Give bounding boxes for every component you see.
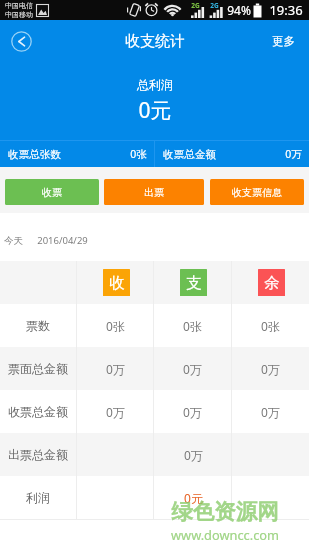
staticText: 0万 — [261, 404, 280, 420]
button[interactable]: 票面总金额 — [0, 347, 309, 390]
staticText: 余 — [264, 273, 280, 293]
button[interactable]: 出票总金额 — [0, 433, 309, 476]
staticText: 今天 — [4, 235, 23, 247]
staticText: 利润 — [26, 490, 50, 505]
staticText: 更多 — [272, 34, 295, 48]
staticText: 中国电信 — [5, 1, 33, 10]
staticText: 收支统计 — [125, 32, 185, 51]
staticText: 票面总金额 — [8, 361, 68, 376]
staticText: 0张 — [261, 318, 280, 334]
staticText: 0元 — [138, 96, 172, 125]
staticText: 0万 — [285, 147, 302, 161]
staticText: 支 — [186, 273, 202, 293]
staticText: 0万 — [261, 361, 280, 377]
button[interactable]: 利润 — [0, 476, 309, 519]
staticText: 总利润 — [137, 77, 173, 92]
staticText: 2016/04/29 — [37, 234, 88, 247]
staticText: 0张 — [183, 318, 202, 334]
button[interactable]: 余 — [258, 269, 285, 296]
staticText: 收票总金额 — [8, 404, 68, 419]
button[interactable]: 收票总金额 — [0, 390, 309, 433]
button[interactable]: 收支票信息 — [210, 179, 304, 205]
staticText: 2G — [191, 1, 200, 10]
staticText: 94% — [227, 2, 251, 18]
staticText: 0张 — [130, 147, 147, 161]
staticText: 出票总金额 — [8, 447, 68, 462]
staticText: 票数 — [26, 318, 50, 333]
staticText: 绿色资源网 — [171, 498, 279, 525]
button[interactable]: 支 — [180, 269, 207, 296]
button[interactable]: 出票 — [104, 179, 204, 205]
button[interactable]: 更多 — [256, 23, 309, 59]
staticText: 收票总张数 — [8, 148, 61, 161]
staticText: 收 — [109, 273, 125, 293]
button[interactable]: 收票总张数 — [0, 141, 154, 167]
staticText: 出票 — [144, 186, 164, 199]
staticText: 0万 — [106, 404, 125, 420]
staticText: 收票总金额 — [163, 148, 216, 161]
staticText: 2G — [210, 1, 219, 10]
staticText: 收支票信息 — [232, 186, 282, 199]
staticText: 0万 — [183, 404, 202, 420]
staticText: 0张 — [106, 318, 125, 334]
button[interactable]: 收票 — [5, 179, 99, 205]
staticText: 0万 — [106, 361, 125, 377]
button[interactable]: 收 — [103, 269, 130, 296]
staticText: 19:36 — [269, 1, 303, 19]
staticText: 收票 — [42, 186, 62, 199]
button[interactable]: Back — [11, 31, 32, 52]
staticText: 0万 — [184, 447, 203, 463]
button[interactable]: 收票总金额 — [155, 141, 309, 167]
staticText: 中国移动 — [5, 10, 33, 19]
button[interactable]: 票数 — [0, 304, 309, 347]
staticText: www.downcc.com — [171, 526, 279, 543]
staticText: 0元 — [184, 490, 203, 506]
staticText: 0万 — [183, 361, 202, 377]
